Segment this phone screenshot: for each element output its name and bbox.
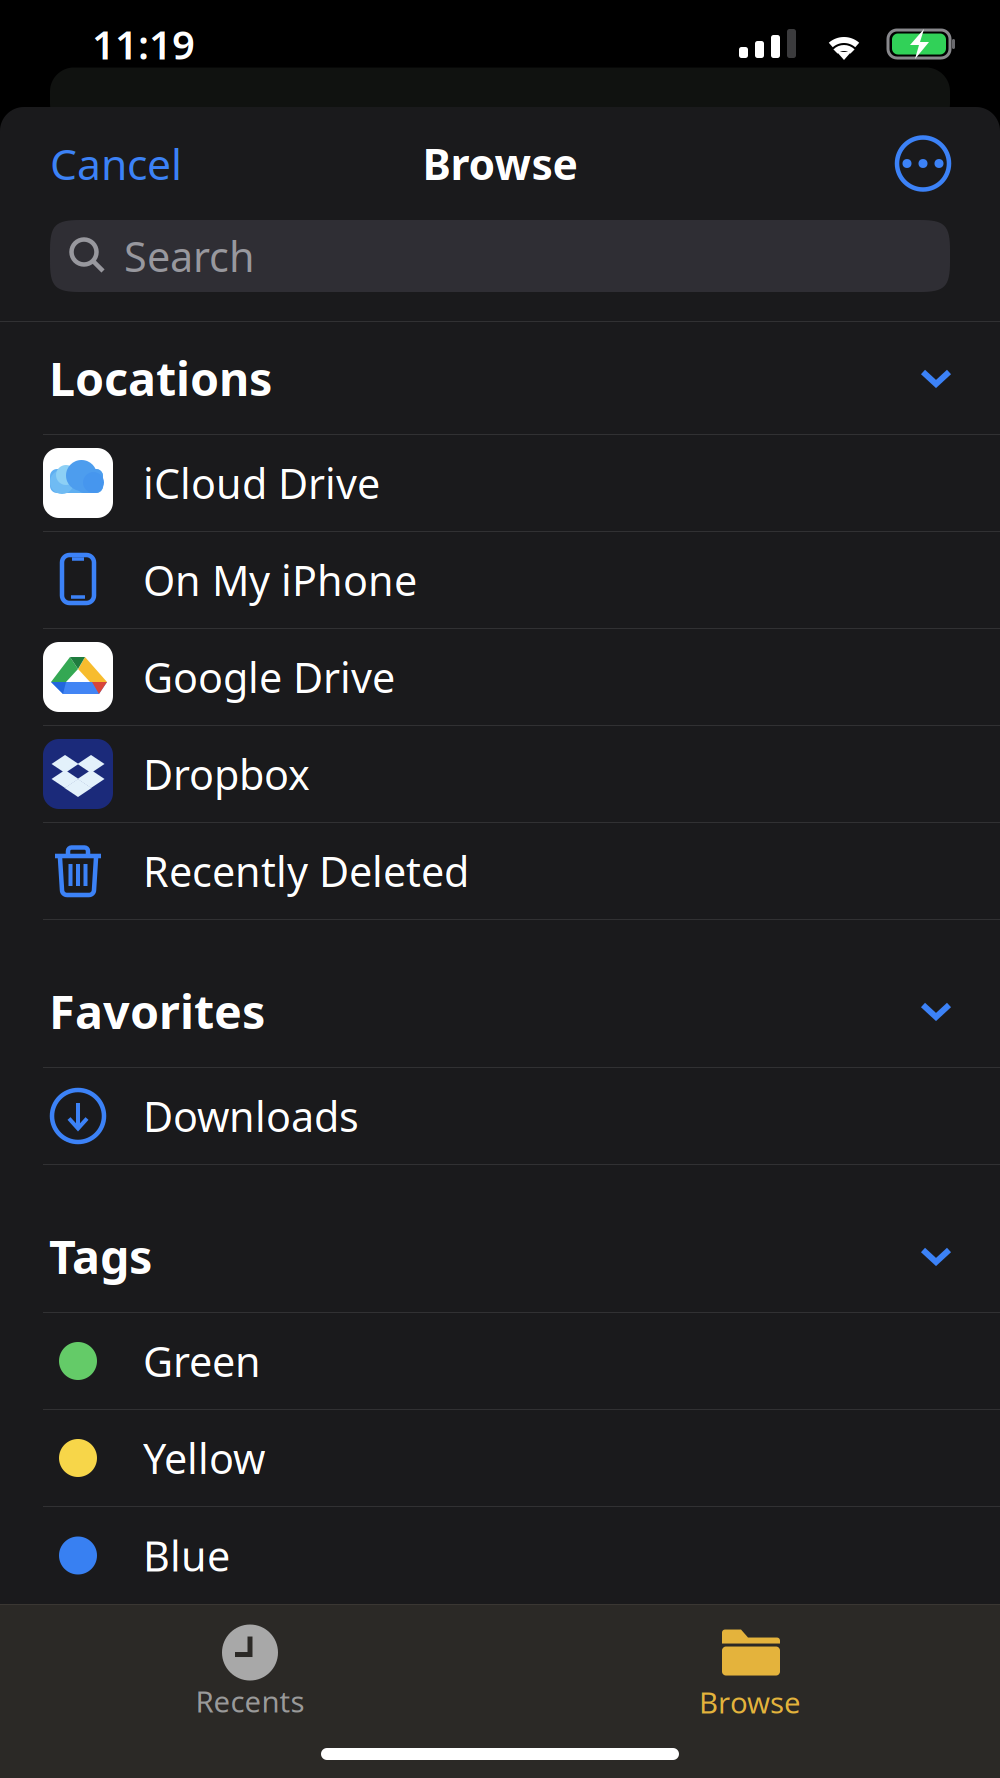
staticText: On My iPhone — [143, 553, 417, 607]
staticText: Yellow — [143, 1431, 265, 1485]
staticText: Favorites — [49, 980, 265, 1042]
button[interactable]: Recently Deleted — [0, 823, 1000, 920]
button[interactable]: Collapse Favorites — [890, 979, 1000, 1043]
button[interactable]: Search — [0, 220, 1000, 321]
staticText: iCloud Drive — [143, 456, 380, 510]
button[interactable]: More — [871, 121, 1000, 205]
button[interactable]: Collapse Locations — [890, 346, 1000, 410]
staticText: Tags — [49, 1225, 152, 1287]
staticText: Search — [124, 229, 255, 283]
staticText: Cancel — [50, 135, 182, 192]
staticText: Recents — [195, 1681, 304, 1720]
staticText: Locations — [49, 347, 272, 409]
button[interactable]: On My iPhone — [0, 532, 1000, 629]
button[interactable]: Downloads — [0, 1068, 1000, 1165]
button[interactable]: Yellow — [0, 1410, 1000, 1507]
button[interactable]: Recents — [0, 1604, 500, 1720]
button[interactable]: Blue — [0, 1507, 1000, 1604]
staticText: Blue — [143, 1528, 230, 1583]
staticText: Browse — [422, 135, 577, 192]
staticText: Downloads — [143, 1089, 359, 1143]
staticText: Google Drive — [143, 650, 395, 704]
button[interactable]: Dropbox — [0, 726, 1000, 823]
staticText: Dropbox — [143, 747, 310, 801]
staticText: Browse — [699, 1682, 801, 1721]
button[interactable]: Browse — [500, 1604, 1000, 1720]
staticText: 11:19 — [92, 17, 195, 70]
staticText: Green — [143, 1334, 261, 1388]
button[interactable]: Cancel — [0, 121, 208, 205]
button[interactable]: Green — [0, 1313, 1000, 1410]
button[interactable]: Collapse Tags — [890, 1224, 1000, 1288]
staticText: Recently Deleted — [143, 844, 469, 898]
button[interactable]: Google Drive — [0, 629, 1000, 726]
button[interactable]: iCloud Drive — [0, 435, 1000, 532]
